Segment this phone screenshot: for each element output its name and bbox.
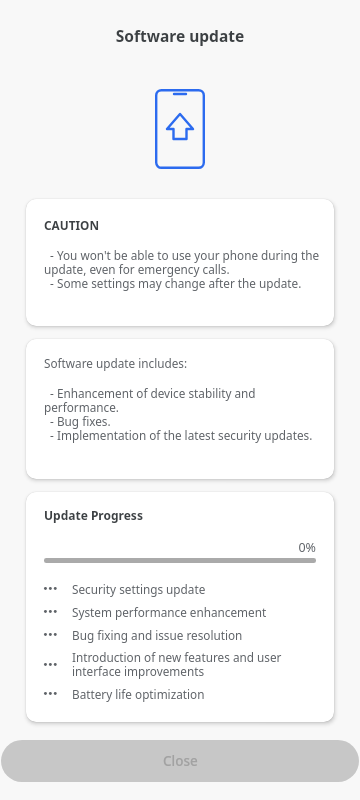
staticText: Battery life optimization: [72, 686, 205, 702]
button[interactable]: Close: [1, 740, 359, 782]
staticText: Software update includes:: [44, 355, 188, 371]
staticText: - Enhancement of device stability and pe…: [44, 385, 321, 443]
staticText: Software update: [0, 25, 360, 46]
staticText: Introduction of new features and user in…: [72, 649, 316, 680]
staticText: Close: [163, 752, 198, 770]
staticText: System performance enhancement: [72, 604, 267, 620]
staticText: - You won't be able to use your phone du…: [44, 247, 321, 291]
staticText: 0%: [44, 539, 316, 556]
staticText: Bug fixing and issue resolution: [72, 627, 243, 643]
staticText: Security settings update: [72, 581, 206, 597]
staticText: CAUTION: [44, 217, 99, 233]
staticText: Update Progress: [44, 507, 143, 523]
